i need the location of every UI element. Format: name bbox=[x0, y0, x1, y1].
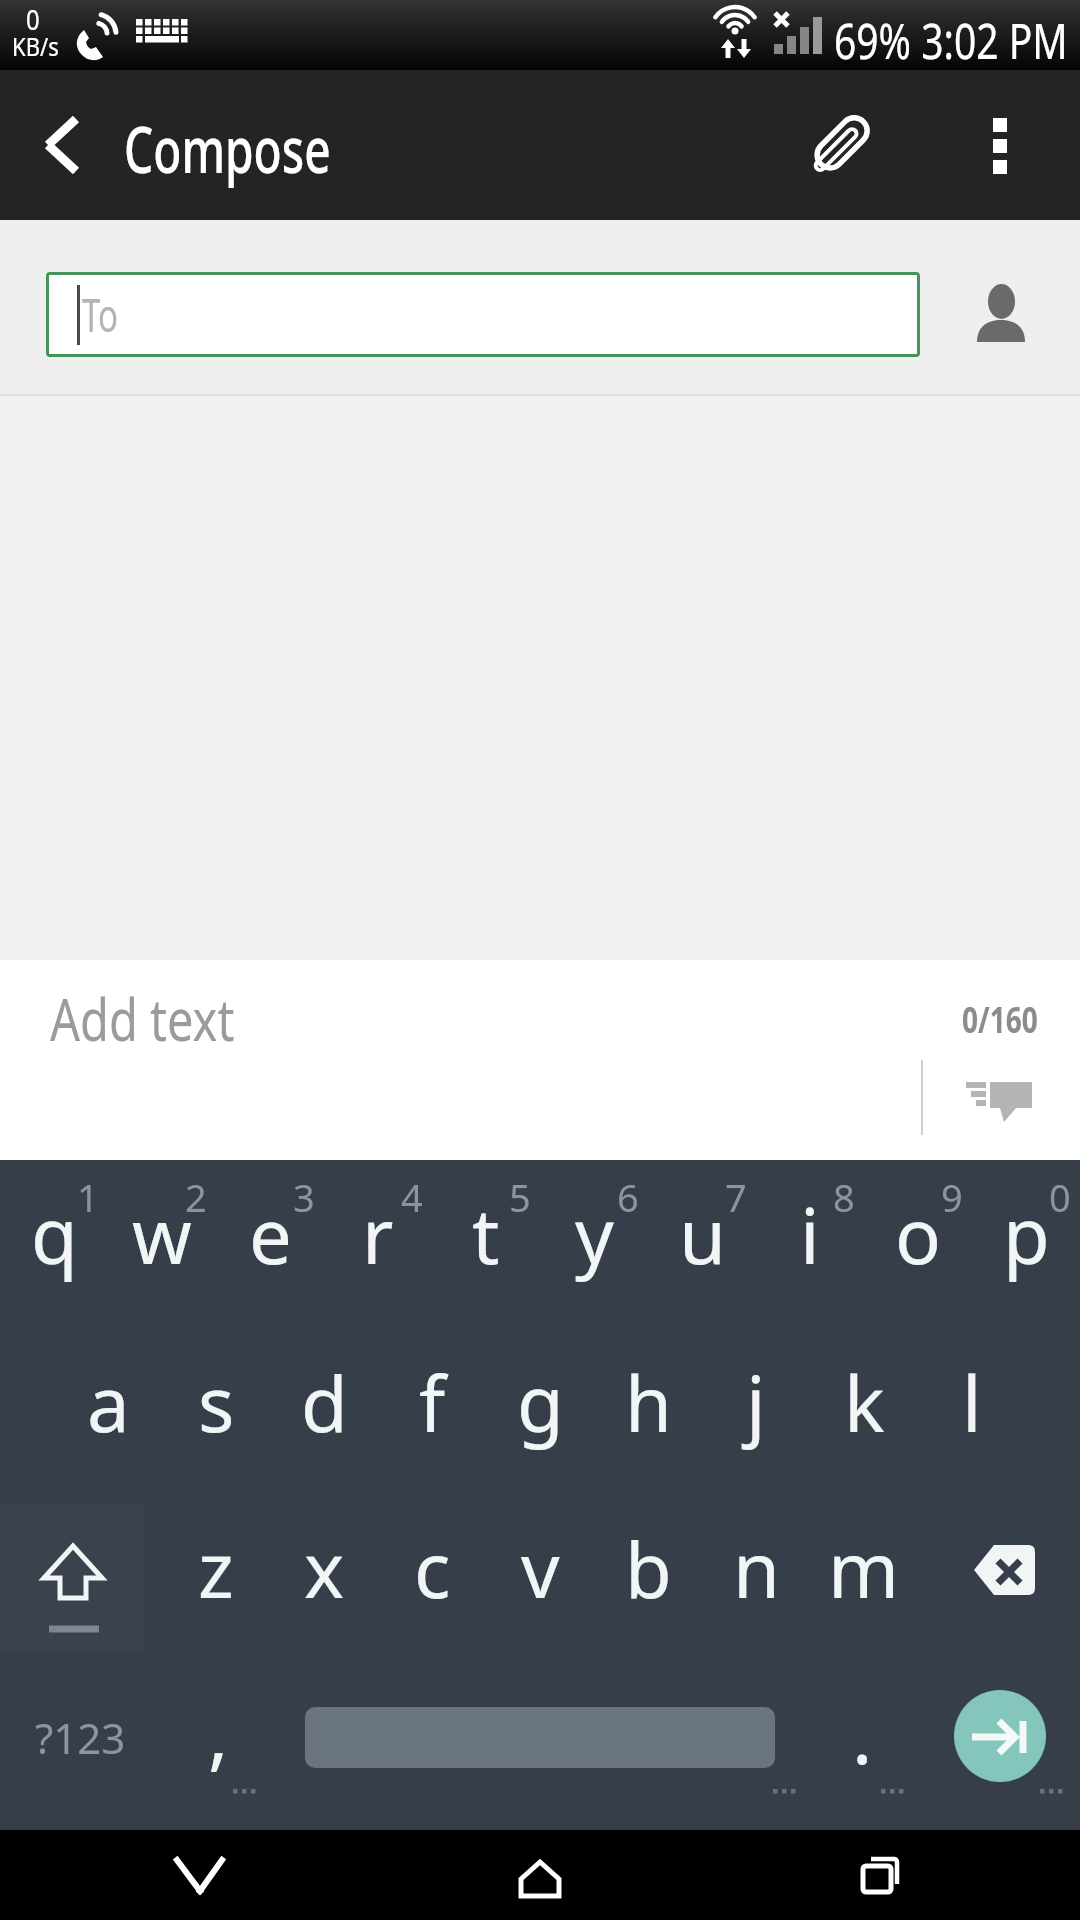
staticText: 2 bbox=[185, 1171, 207, 1223]
staticText: Compose bbox=[124, 105, 331, 192]
staticText: a bbox=[87, 1351, 130, 1455]
button[interactable] bbox=[20, 105, 100, 185]
button[interactable] bbox=[800, 105, 880, 185]
button[interactable]: To bbox=[49, 275, 917, 354]
staticText: v bbox=[521, 1517, 560, 1621]
staticText: u bbox=[679, 1183, 726, 1287]
button[interactable] bbox=[960, 266, 1042, 348]
staticText: x bbox=[304, 1517, 345, 1621]
button[interactable]: h bbox=[548, 1333, 748, 1473]
staticText: g bbox=[517, 1351, 564, 1455]
staticText: 0 bbox=[26, 0, 40, 38]
button[interactable]: z bbox=[116, 1499, 316, 1639]
staticText: 8 bbox=[833, 1171, 855, 1223]
staticText: y bbox=[575, 1183, 614, 1287]
staticText: 0/160 bbox=[962, 996, 1038, 1044]
staticText: b bbox=[625, 1517, 672, 1621]
button[interactable] bbox=[952, 1070, 1042, 1140]
button[interactable] bbox=[0, 1504, 144, 1652]
staticText: w bbox=[132, 1183, 192, 1287]
staticText: To bbox=[82, 283, 119, 346]
staticText: h bbox=[625, 1351, 672, 1455]
button[interactable]: j bbox=[656, 1333, 856, 1473]
button[interactable]: u bbox=[602, 1165, 802, 1305]
staticText: s bbox=[198, 1351, 235, 1455]
staticText: 7 bbox=[725, 1171, 747, 1223]
button[interactable]: . bbox=[762, 1665, 962, 1805]
button[interactable] bbox=[840, 1835, 920, 1915]
staticText: c bbox=[414, 1517, 451, 1621]
button[interactable]: p bbox=[926, 1165, 1080, 1305]
staticText: 5 bbox=[509, 1171, 531, 1223]
button[interactable]: d bbox=[224, 1333, 424, 1473]
staticText: . bbox=[852, 1683, 873, 1787]
button[interactable] bbox=[160, 1835, 240, 1915]
staticText: n bbox=[733, 1517, 780, 1621]
button[interactable]: s bbox=[116, 1333, 316, 1473]
staticText: 4 bbox=[401, 1171, 423, 1223]
button[interactable]: , bbox=[118, 1663, 318, 1803]
button[interactable]: n bbox=[656, 1499, 856, 1639]
button[interactable] bbox=[500, 1835, 580, 1915]
staticText: z bbox=[198, 1517, 234, 1621]
staticText: 9 bbox=[941, 1171, 963, 1223]
button[interactable]: w bbox=[62, 1165, 262, 1305]
staticText: f bbox=[419, 1351, 446, 1455]
button[interactable]: a bbox=[8, 1333, 208, 1473]
button[interactable]: q bbox=[0, 1165, 154, 1305]
staticText: t bbox=[472, 1183, 500, 1287]
button[interactable]: f bbox=[332, 1333, 532, 1473]
button[interactable]: b bbox=[548, 1499, 748, 1639]
button[interactable]: l bbox=[872, 1333, 1072, 1473]
staticText: d bbox=[301, 1351, 348, 1455]
staticText: KB/s bbox=[12, 28, 60, 63]
staticText: 6 bbox=[617, 1171, 639, 1223]
button[interactable]: r bbox=[278, 1165, 478, 1305]
button[interactable]: g bbox=[440, 1333, 640, 1473]
button[interactable]: o bbox=[818, 1165, 1018, 1305]
staticText: j bbox=[746, 1351, 766, 1455]
staticText: r bbox=[362, 1183, 394, 1287]
staticText: l bbox=[962, 1351, 982, 1455]
staticText: 3 bbox=[293, 1171, 315, 1223]
button[interactable]: ?123 bbox=[0, 1667, 180, 1807]
button[interactable]: y bbox=[494, 1165, 694, 1305]
button[interactable]: m bbox=[764, 1499, 964, 1639]
button[interactable]: k bbox=[764, 1333, 964, 1473]
staticText: e bbox=[249, 1183, 292, 1287]
staticText: , bbox=[208, 1681, 229, 1785]
button[interactable]: v bbox=[440, 1499, 640, 1639]
button[interactable]: i bbox=[710, 1165, 910, 1305]
staticText: Add text bbox=[50, 979, 235, 1058]
button[interactable] bbox=[954, 1690, 1046, 1782]
staticText: m bbox=[828, 1517, 900, 1621]
staticText: o bbox=[895, 1183, 941, 1287]
staticText: 0 bbox=[1049, 1171, 1071, 1223]
button[interactable]: c bbox=[332, 1499, 532, 1639]
staticText: 69% 3:02 PM bbox=[834, 6, 1068, 74]
button[interactable]: t bbox=[386, 1165, 586, 1305]
staticText: i bbox=[800, 1183, 820, 1287]
staticText: k bbox=[844, 1351, 885, 1455]
button[interactable] bbox=[964, 105, 1044, 185]
button[interactable]: e bbox=[170, 1165, 370, 1305]
button[interactable] bbox=[952, 1540, 1062, 1610]
button[interactable]: x bbox=[224, 1499, 424, 1639]
staticText: ?123 bbox=[35, 1709, 126, 1766]
staticText: 1 bbox=[77, 1171, 99, 1223]
staticText: p bbox=[1003, 1183, 1050, 1287]
staticText: q bbox=[31, 1183, 78, 1287]
